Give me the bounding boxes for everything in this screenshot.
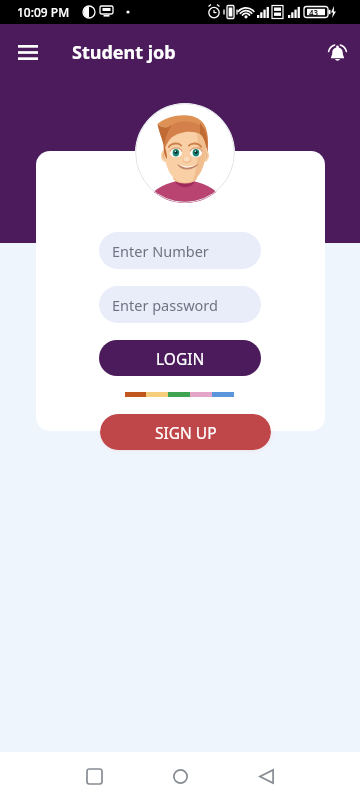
button[interactable]: Home <box>158 754 202 798</box>
button[interactable]: SIGN UP <box>100 414 271 450</box>
button[interactable]: LOGIN <box>99 340 261 376</box>
button[interactable]: Back <box>244 754 288 798</box>
staticText: LOGIN <box>156 348 205 369</box>
staticText: 10:09 PM <box>17 4 70 20</box>
staticText: SIGN UP <box>155 422 217 443</box>
button[interactable]: Recents <box>72 754 116 798</box>
button[interactable]: Menu <box>8 37 48 67</box>
button[interactable]: Enter password <box>99 286 261 323</box>
staticText: Enter Number <box>112 241 209 261</box>
staticText: 43 <box>309 7 319 18</box>
staticText: Enter password <box>112 295 218 315</box>
staticText: Student job <box>72 40 176 65</box>
button[interactable]: Notifications <box>320 36 354 70</box>
button[interactable]: Enter Number <box>99 232 261 269</box>
